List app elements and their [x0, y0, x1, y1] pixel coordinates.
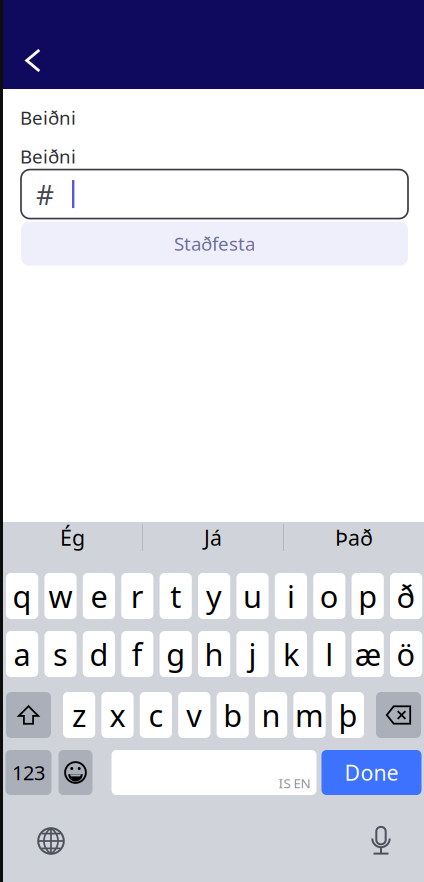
- button[interactable]: n: [255, 692, 287, 738]
- button[interactable]: ð: [390, 573, 422, 619]
- staticText: m: [295, 695, 324, 735]
- staticText: Beiðni: [20, 105, 76, 130]
- button[interactable]: k: [275, 631, 307, 677]
- staticText: j: [248, 634, 256, 674]
- staticText: Staðfesta: [174, 231, 255, 256]
- staticText: k: [283, 634, 299, 674]
- staticText: d: [89, 634, 108, 674]
- staticText: l: [325, 634, 333, 674]
- staticText: þ: [338, 695, 357, 735]
- button[interactable]: r: [121, 573, 153, 619]
- staticText: b: [223, 695, 242, 735]
- staticText: Já: [204, 523, 222, 552]
- button[interactable]: o: [313, 573, 345, 619]
- staticText: t: [170, 576, 181, 616]
- staticText: i: [287, 576, 295, 616]
- button[interactable]: Emoji: [58, 750, 92, 795]
- button[interactable]: Já: [143, 512, 283, 562]
- staticText: h: [205, 634, 224, 674]
- staticText: ö: [397, 634, 416, 674]
- button[interactable]: Back: [11, 38, 55, 82]
- button[interactable]: 123: [5, 750, 51, 795]
- staticText: Það: [335, 523, 373, 552]
- button[interactable]: æ: [352, 631, 384, 677]
- button[interactable]: Space: [111, 750, 316, 795]
- button[interactable]: Dictation: [358, 818, 404, 864]
- staticText: 123: [12, 759, 45, 786]
- staticText: p: [358, 576, 377, 616]
- button[interactable]: g: [160, 631, 192, 677]
- staticText: z: [72, 695, 86, 735]
- button[interactable]: v: [178, 692, 210, 738]
- button[interactable]: Done: [321, 750, 421, 795]
- staticText: Done: [344, 758, 398, 787]
- staticText: o: [320, 576, 339, 616]
- staticText: w: [48, 576, 72, 616]
- button[interactable]: w: [44, 573, 77, 619]
- button[interactable]: u: [236, 573, 269, 619]
- staticText: f: [132, 634, 143, 674]
- staticText: Ég: [60, 523, 85, 552]
- staticText: g: [166, 634, 185, 674]
- button[interactable]: Delete: [376, 692, 421, 738]
- staticText: IS EN: [278, 774, 310, 792]
- button[interactable]: b: [217, 692, 249, 738]
- staticText: r: [131, 576, 144, 616]
- button[interactable]: h: [198, 631, 230, 677]
- staticText: a: [14, 634, 31, 674]
- button[interactable]: a: [6, 631, 38, 677]
- button[interactable]: Það: [284, 512, 424, 562]
- button[interactable]: ö: [390, 631, 422, 677]
- button[interactable]: s: [44, 631, 77, 677]
- staticText: n: [262, 695, 281, 735]
- button[interactable]: Staðfesta: [21, 222, 408, 266]
- staticText: #: [36, 175, 54, 213]
- button[interactable]: Shift: [6, 692, 51, 738]
- button[interactable]: l: [313, 631, 345, 677]
- button[interactable]: f: [121, 631, 153, 677]
- staticText: Beiðni: [20, 144, 76, 169]
- button[interactable]: q: [6, 573, 38, 619]
- button[interactable]: c: [140, 692, 172, 738]
- staticText: s: [53, 634, 68, 674]
- staticText: æ: [355, 634, 381, 674]
- button[interactable]: y: [198, 573, 230, 619]
- button[interactable]: Next keyboard: [28, 818, 74, 864]
- button[interactable]: d: [83, 631, 115, 677]
- staticText: c: [148, 695, 163, 735]
- button[interactable]: e: [83, 573, 115, 619]
- staticText: ð: [397, 576, 416, 616]
- button[interactable]: j: [236, 631, 269, 677]
- button[interactable]: þ: [332, 692, 364, 738]
- button[interactable]: t: [160, 573, 192, 619]
- staticText: y: [206, 576, 222, 616]
- button[interactable]: Ég: [3, 512, 142, 562]
- staticText: x: [109, 695, 125, 735]
- button[interactable]: i: [275, 573, 307, 619]
- button[interactable]: m: [293, 692, 326, 738]
- staticText: u: [243, 576, 262, 616]
- staticText: v: [186, 695, 202, 735]
- button[interactable]: z: [63, 692, 95, 738]
- button[interactable]: x: [101, 692, 134, 738]
- staticText: q: [13, 576, 32, 616]
- staticText: e: [90, 576, 107, 616]
- button[interactable]: p: [352, 573, 384, 619]
